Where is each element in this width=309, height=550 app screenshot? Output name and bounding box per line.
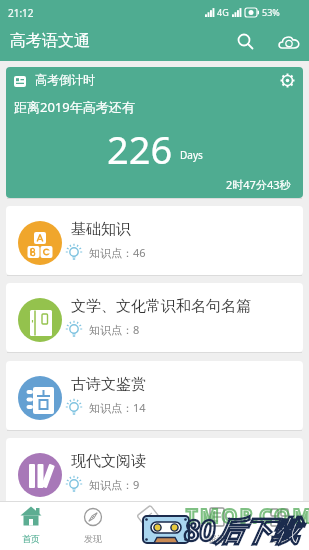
- staticText: 基础知识: [71, 220, 131, 239]
- staticText: 知识点：8: [89, 322, 140, 337]
- staticText: 现代文阅读: [71, 452, 146, 471]
- staticText: 更多: [270, 533, 288, 544]
- staticText: 发现: [84, 533, 102, 544]
- staticText: 资讯: [208, 533, 226, 544]
- staticText: 高考语文通: [10, 31, 90, 51]
- staticText: 53%: [262, 6, 280, 18]
- staticText: 题库: [146, 533, 164, 544]
- staticText: 距离2019年高考还有: [14, 98, 135, 116]
- staticText: 4G: [217, 6, 229, 18]
- staticText: Days: [180, 148, 203, 162]
- staticText: 高考倒计时: [35, 72, 95, 87]
- staticText: 知识点：9: [89, 477, 140, 492]
- staticText: 知识点：46: [89, 245, 146, 260]
- staticText: 2时47分43秒: [226, 177, 291, 192]
- staticText: 知识点：14: [89, 400, 146, 415]
- staticText: 首页: [22, 533, 40, 544]
- staticText: 文学、文化常识和名句名篇: [71, 297, 251, 316]
- staticText: 21:12: [8, 6, 34, 20]
- staticText: 226: [107, 123, 173, 175]
- staticText: TMOP.COM: [186, 502, 309, 529]
- staticText: 80后下载: [184, 511, 299, 549]
- staticText: 古诗文鉴赏: [71, 375, 146, 394]
